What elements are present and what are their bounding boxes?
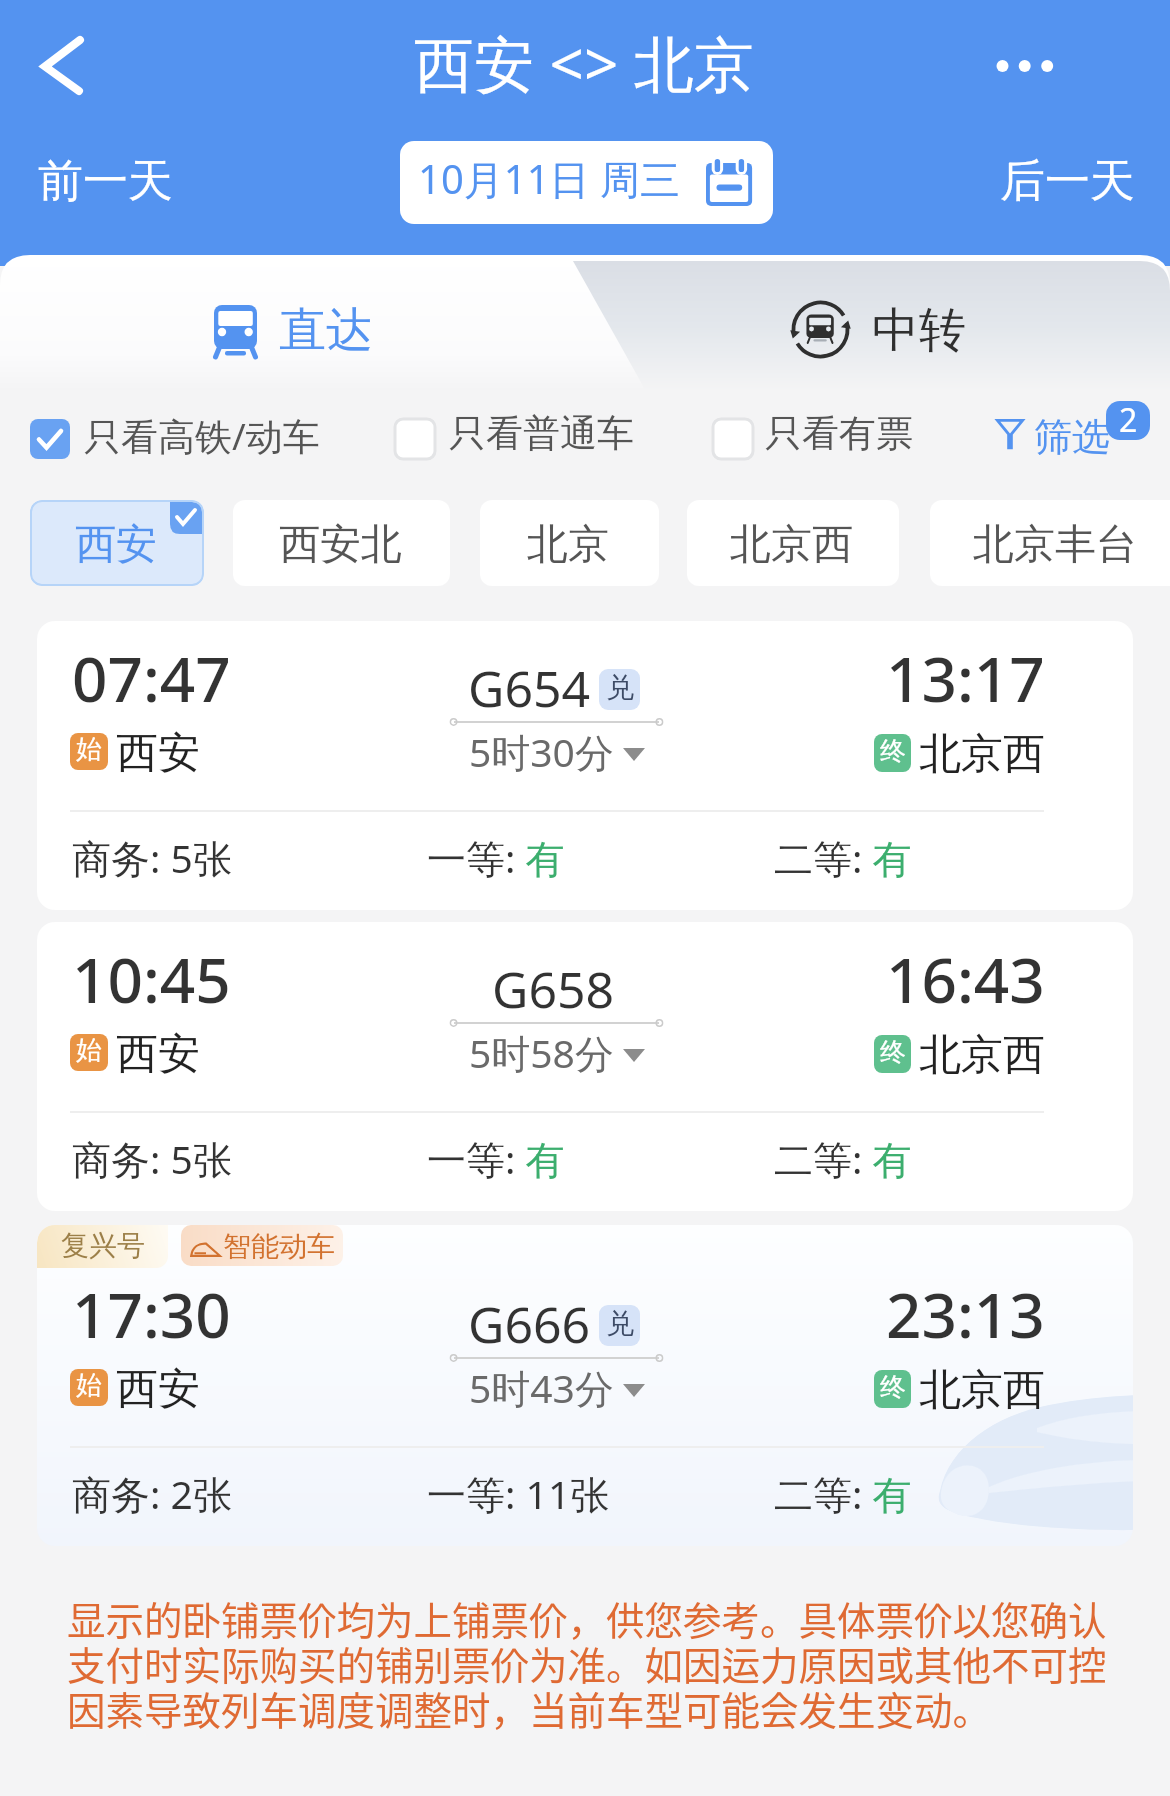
staticText: 终: [880, 1036, 906, 1069]
staticText: 只看普通车: [449, 410, 634, 457]
staticText: G666: [468, 1290, 591, 1358]
staticText: 显示的卧铺票价均为上铺票价，供您参考。具体票价以您确认: [67, 1590, 1107, 1646]
staticText: 只看有票: [765, 410, 913, 457]
staticText: 西安: [75, 519, 157, 571]
staticText: 商务: 2张: [72, 1467, 232, 1520]
staticText: 二等: 有: [774, 831, 912, 884]
staticText: 23:13: [886, 1272, 1045, 1356]
button[interactable]: More options: [975, 32, 1075, 100]
staticText: 商务: 5张: [72, 831, 232, 884]
staticText: 5时43分: [469, 1361, 614, 1414]
staticText: 西安北: [279, 519, 402, 571]
staticText: 北京西: [919, 1029, 1045, 1082]
staticText: 智能动车: [223, 1229, 335, 1264]
staticText: 西安: [116, 727, 200, 780]
staticText: 一等: 11张: [427, 1467, 610, 1520]
staticText: 西安 <> 北京: [414, 22, 754, 104]
staticText: 支付时实际购买的铺别票价为准。如因运力原因或其他不可控: [67, 1635, 1107, 1691]
staticText: 终: [880, 1371, 906, 1404]
staticText: 因素导致列车调度调整时，当前车型可能会发生变动。: [67, 1680, 992, 1736]
button[interactable]: 后一天: [980, 145, 1150, 219]
staticText: 北京西: [730, 519, 853, 571]
button[interactable]: 07:47: [37, 621, 1133, 910]
button[interactable]: 北京西: [687, 500, 899, 586]
staticText: 只看高铁/动车: [84, 410, 320, 461]
staticText: 商务: 5张: [72, 1132, 232, 1185]
staticText: 5时58分: [469, 1026, 614, 1079]
staticText: 13:17: [886, 636, 1045, 720]
staticText: G654: [468, 654, 591, 722]
staticText: 兑: [606, 1306, 634, 1341]
button[interactable]: 直达: [0, 255, 585, 383]
staticText: 2: [1119, 398, 1138, 442]
staticText: 后一天: [1000, 153, 1135, 210]
button[interactable]: 10:45: [37, 922, 1133, 1211]
staticText: 中转: [872, 301, 966, 360]
staticText: 一等: 有: [427, 1132, 565, 1185]
button[interactable]: 只看有票: [707, 410, 922, 468]
staticText: 西安: [116, 1363, 200, 1416]
button[interactable]: 西安北: [233, 500, 450, 586]
staticText: 北京丰台: [973, 519, 1137, 571]
button[interactable]: Back: [12, 22, 92, 96]
staticText: 始: [76, 1369, 102, 1402]
button[interactable]: 北京: [480, 500, 659, 586]
staticText: 北京西: [919, 728, 1045, 781]
staticText: 直达: [279, 301, 373, 360]
staticText: 始: [76, 1034, 102, 1067]
button[interactable]: 前一天: [20, 145, 190, 219]
button[interactable]: 西安: [30, 500, 204, 586]
staticText: 10月11日 周三: [418, 151, 680, 206]
staticText: 07:47: [72, 636, 231, 720]
button[interactable]: 10月11日 周三: [400, 141, 773, 224]
button[interactable]: 只看普通车: [390, 410, 640, 468]
staticText: 17:30: [72, 1272, 231, 1356]
staticText: 北京: [527, 519, 609, 571]
staticText: 10:45: [72, 937, 231, 1021]
staticText: 复兴号: [61, 1228, 145, 1263]
staticText: 16:43: [886, 937, 1045, 1021]
staticText: 西安: [116, 1028, 200, 1081]
staticText: 一等: 有: [427, 831, 565, 884]
button[interactable]: 中转: [585, 261, 1170, 383]
staticText: 终: [880, 735, 906, 768]
staticText: 北京西: [919, 1364, 1045, 1417]
staticText: 二等: 有: [774, 1467, 912, 1520]
staticText: 5时30分: [469, 725, 614, 778]
button[interactable]: 只看高铁/动车: [25, 410, 325, 468]
button[interactable]: 筛选: [990, 406, 1115, 464]
staticText: 兑: [606, 670, 634, 705]
staticText: 始: [76, 733, 102, 766]
staticText: 二等: 有: [774, 1132, 912, 1185]
staticText: G658: [492, 955, 615, 1023]
button[interactable]: 复兴号: [37, 1225, 1133, 1546]
staticText: 前一天: [38, 153, 173, 210]
staticText: 筛选: [1034, 413, 1110, 461]
button[interactable]: 北京丰台: [930, 500, 1170, 586]
